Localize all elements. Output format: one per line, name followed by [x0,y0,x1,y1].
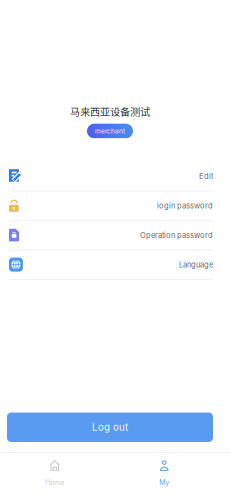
staticText: My [159,478,169,487]
button[interactable]: login password [9,191,213,221]
button[interactable]: Edit [9,162,213,191]
button[interactable]: Operation password [9,221,213,250]
staticText: Home [45,478,64,487]
staticText: 马来西亚设备测试 [70,104,150,119]
staticText: Language [179,260,213,269]
button[interactable]: Language [9,250,213,280]
staticText: Edit [199,171,213,181]
button[interactable]: Home [0,453,109,500]
staticText: login password [157,201,213,210]
staticText: Log out [92,421,128,433]
staticText: Operation password [140,230,213,240]
staticText: merchant [95,127,125,135]
button[interactable]: My [109,453,219,500]
button[interactable]: Log out [7,412,213,442]
